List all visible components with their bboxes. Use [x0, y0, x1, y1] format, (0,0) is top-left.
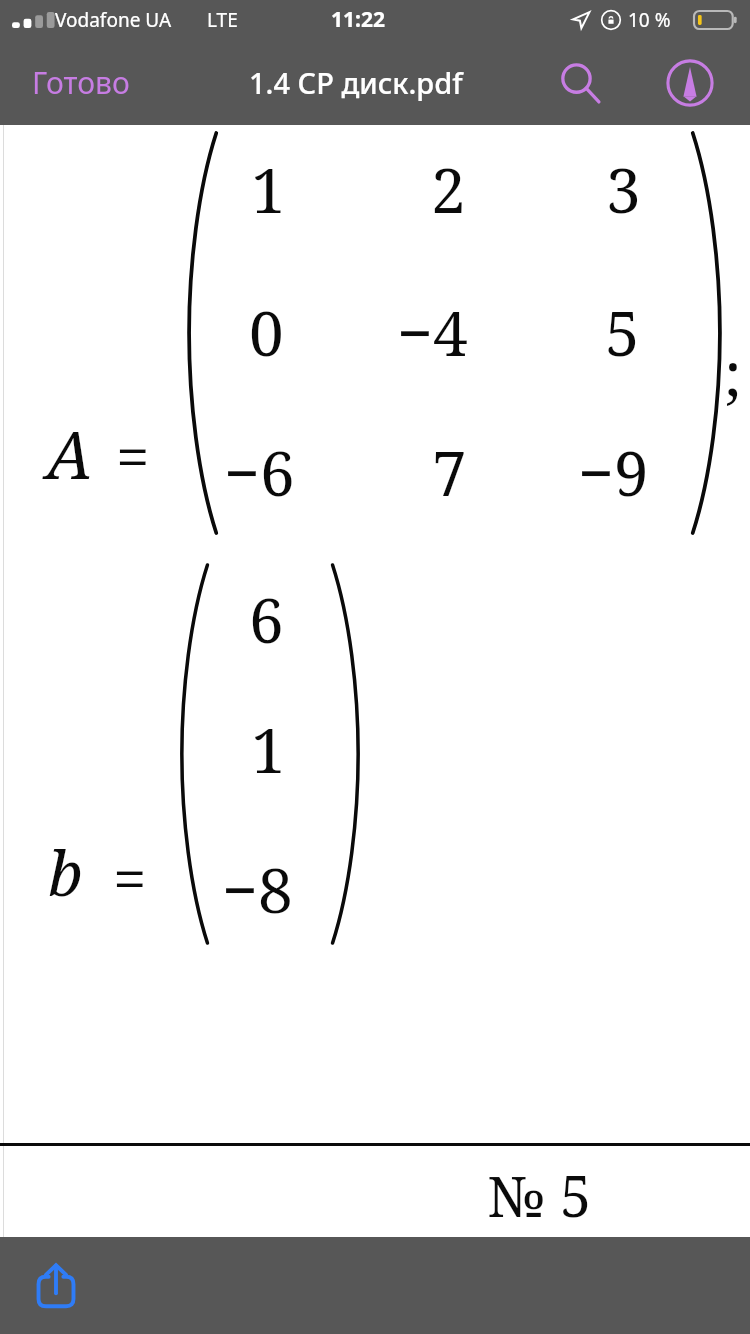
staticText: 7 [432, 430, 467, 514]
staticText: 2 [431, 147, 466, 231]
staticText: 11:22 [331, 5, 385, 34]
staticText: A [46, 408, 93, 498]
staticText: № 5 [488, 1157, 592, 1233]
staticText: −6 [224, 430, 295, 514]
staticText: −9 [578, 430, 649, 514]
staticText: 1 [251, 147, 286, 231]
staticText: Vodafone UA [55, 7, 172, 33]
button[interactable]: Готово [22, 54, 140, 111]
staticText: 1.4 СР диск.pdf [249, 63, 463, 102]
staticText: 5 [605, 290, 640, 374]
staticText: 0 [249, 290, 284, 374]
staticText: b [48, 830, 83, 914]
staticText: 3 [606, 147, 641, 231]
button[interactable]: Markup [658, 51, 722, 115]
staticText: ; [724, 330, 742, 414]
button[interactable]: Search [548, 51, 612, 115]
staticText: = [113, 837, 147, 919]
staticText: LTE [207, 7, 238, 33]
staticText: 1 [251, 707, 286, 791]
staticText: −8 [222, 847, 293, 931]
staticText: = [116, 415, 150, 497]
staticText: −4 [397, 290, 468, 374]
staticText: Готово [32, 62, 130, 103]
button[interactable]: Share [14, 1244, 98, 1328]
staticText: 10 % [628, 7, 671, 33]
staticText: 6 [249, 577, 284, 661]
